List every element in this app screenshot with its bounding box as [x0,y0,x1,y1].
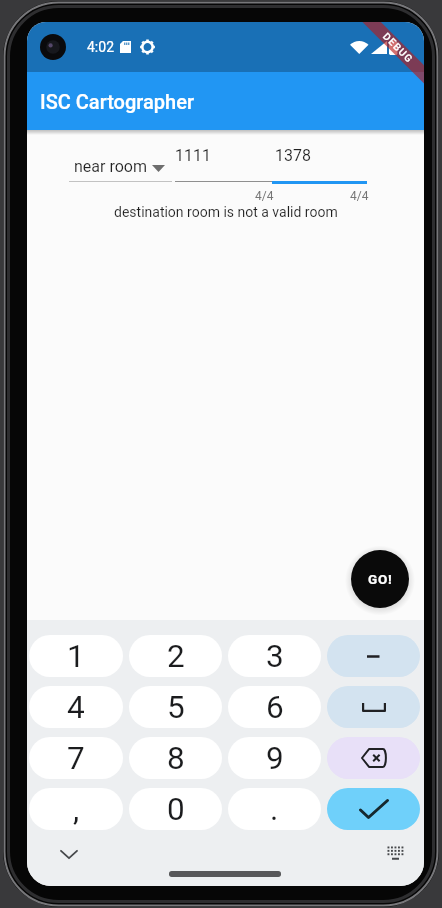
staticText: 4/4 [350,189,369,203]
staticText: 9 [266,740,284,777]
button[interactable] [327,788,420,830]
staticText: ISC Cartographer [40,90,194,113]
staticText: 1 [67,638,85,675]
button[interactable]: 2 [129,635,222,677]
button[interactable]: 5 [129,686,222,728]
button[interactable]: 1 [29,635,123,677]
button[interactable]: 0 [129,788,222,830]
staticText: near room [74,157,147,176]
button[interactable] [327,635,420,677]
staticText: 2 [167,638,185,675]
staticText: . [270,791,279,828]
staticText: 0 [167,791,185,828]
button[interactable]: 6 [228,686,321,728]
staticText: 4:02 [87,39,114,55]
button[interactable]: 9 [228,737,321,779]
button[interactable]: 1111 [175,138,272,181]
button[interactable] [53,840,85,868]
button[interactable]: 3 [228,635,321,677]
button[interactable]: 7 [29,737,123,779]
staticText: 4/4 [255,189,274,203]
staticText: 8 [167,740,185,777]
button[interactable]: GO! [351,550,409,608]
staticText: 1378 [275,146,311,165]
staticText: , [73,791,80,828]
staticText: 4 [67,689,85,726]
button[interactable]: near room [69,150,177,182]
button[interactable]: 1378 [272,138,367,181]
button[interactable] [379,839,411,867]
button[interactable]: 4 [29,686,123,728]
button[interactable]: , [29,788,123,830]
button[interactable] [327,686,420,728]
button[interactable]: . [228,788,321,830]
staticText: 6 [266,689,284,726]
staticText: GO! [368,571,393,587]
staticText: 7 [67,740,85,777]
button[interactable]: 8 [129,737,222,779]
staticText: 5 [167,689,185,726]
button[interactable] [327,737,420,779]
staticText: 1111 [175,146,211,165]
staticText: 3 [266,638,284,675]
staticText: destination room is not a valid room [114,204,338,220]
